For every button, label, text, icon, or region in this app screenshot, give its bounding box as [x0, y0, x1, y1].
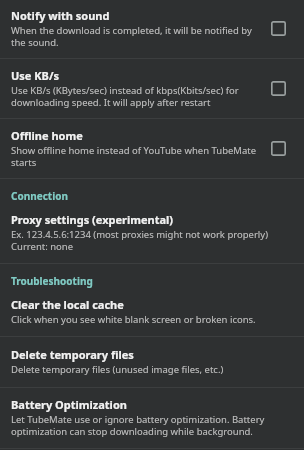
other: Offline home — [261, 141, 296, 156]
staticText: Delete temporary files — [11, 347, 134, 362]
button[interactable]: Clear the local cache — [0, 292, 304, 336]
button[interactable]: Use KB/s — [0, 59, 304, 118]
button[interactable]: Notify with sound — [0, 0, 304, 58]
staticText: Delete temporary files (unused image fil… — [11, 363, 224, 376]
staticText: Offline home — [11, 128, 83, 143]
staticText: Troubleshooting — [11, 274, 93, 288]
staticText: Connection — [11, 189, 68, 203]
staticText: Notify with sound — [11, 8, 110, 23]
staticText: Clear the local cache — [11, 297, 124, 312]
staticText: Let TubeMate use or ignore battery optim… — [11, 413, 296, 438]
button[interactable]: Offline home — [0, 119, 304, 178]
staticText: Ex. 123.4.5.6:1234 (most proxies might n… — [11, 228, 268, 253]
staticText: Click when you see white blank screen or… — [11, 313, 256, 326]
staticText: When the download is completed, it will … — [11, 24, 261, 49]
other: Use KB/s — [261, 81, 296, 96]
staticText: Show offline home instead of YouTube whe… — [11, 144, 261, 169]
staticText: Use KB/s (KBytes/sec) instead of kbps(Kb… — [11, 84, 261, 109]
staticText: Proxy settings (experimental) — [11, 212, 174, 227]
button[interactable]: Battery Optimization — [0, 388, 304, 448]
staticText: Battery Optimization — [11, 397, 127, 412]
button[interactable]: Delete temporary files — [0, 337, 304, 387]
staticText: Use KB/s — [11, 68, 59, 83]
other: Notify with sound — [261, 21, 296, 36]
button[interactable]: Proxy settings (experimental) — [0, 207, 304, 263]
